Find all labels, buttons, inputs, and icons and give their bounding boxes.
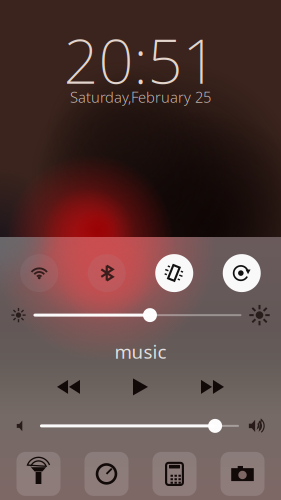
button[interactable]: Camera — [220, 452, 264, 496]
staticText: Saturday,February 25 — [70, 87, 211, 107]
button[interactable]: Rotation Lock — [223, 254, 261, 292]
button[interactable]: Calculator — [152, 452, 196, 496]
button[interactable]: Rewind — [45, 372, 91, 402]
button[interactable]: Flashlight — [16, 452, 60, 496]
button[interactable]: Do Not Disturb — [155, 254, 193, 292]
button[interactable]: Fast Forward — [189, 372, 235, 402]
button[interactable]: Wi-Fi — [20, 254, 58, 292]
staticText: 20:51 — [63, 19, 217, 101]
button[interactable]: Bluetooth — [88, 254, 126, 292]
button[interactable]: Play — [117, 372, 163, 402]
staticText: music — [114, 339, 166, 364]
button[interactable]: Timer — [84, 452, 128, 496]
